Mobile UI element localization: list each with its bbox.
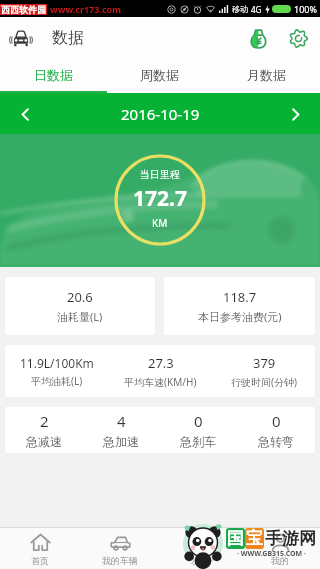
staticText: 宝 [246,528,263,549]
button[interactable]: 0 [237,407,315,453]
staticText: 急加速 [103,434,139,449]
button[interactable]: 20.6 [5,277,155,335]
staticText: 27.3 [148,354,174,372]
button[interactable]: Settings [282,22,314,54]
other: Vehicle [9,26,33,50]
button[interactable]: 周数据 [106,58,213,91]
staticText: 平均车速(KM/H) [124,375,197,389]
staticText: 首页 [31,555,49,566]
button[interactable]: Home [0,528,80,569]
staticText: 平均油耗(L) [31,374,83,388]
staticText: 379 [253,354,276,372]
staticText: 数据 [52,28,84,48]
button[interactable]: Me [240,528,320,569]
staticText: 100% [294,3,317,15]
button[interactable]: 118.7 [164,277,315,335]
button[interactable]: 379 [212,345,315,397]
button[interactable]: 2 [5,407,82,453]
staticText: 油耗量(L) [57,309,103,324]
staticText: www.cr173.com [50,3,121,15]
staticText: 172.7 [133,184,187,213]
staticText: 我的 [271,555,289,566]
staticText: 11.9L/100Km [20,355,94,371]
staticText: 周数据 [140,67,179,83]
button[interactable]: Previous day [14,103,36,125]
button[interactable]: 0 [159,407,237,453]
staticText: 急减速 [26,434,62,449]
staticText: 发现 [191,555,209,566]
staticText: 0 [194,411,203,431]
button[interactable]: 27.3 [109,345,212,397]
staticText: 当日里程 [140,168,180,181]
staticText: 西西软件园 [1,4,46,15]
button[interactable]: 日数据 [0,58,106,91]
staticText: 本日参考油费(元) [198,309,282,324]
button[interactable]: 11.9L/100Km [5,345,109,397]
staticText: 118.7 [223,288,257,306]
staticText: 急刹车 [180,434,216,449]
button[interactable]: Fuel cost [242,22,274,54]
button[interactable]: Discover [160,528,240,569]
staticText: KM [152,216,168,230]
staticText: 急转弯 [258,434,294,449]
staticText: 移动 [232,4,248,14]
staticText: 行驶时间(分钟) [231,375,297,389]
staticText: 20.6 [67,288,93,306]
button[interactable]: Next day [284,103,306,125]
staticText: 月数据 [247,67,286,83]
staticText: · WWW.GB315.COM · [237,549,306,559]
button[interactable]: My vehicle [80,528,160,569]
staticText: 0 [272,411,281,431]
staticText: 我的车辆 [102,555,138,566]
staticText: 4G [251,4,262,15]
staticText: 手游网 [265,528,316,549]
staticText: 国 [227,528,244,549]
staticText: 日数据 [34,67,73,83]
button[interactable]: 4 [82,407,159,453]
staticText: 2 [40,411,49,431]
staticText: 4 [117,411,126,431]
staticText: 2016-10-19 [121,104,200,124]
button[interactable]: 月数据 [213,58,320,91]
